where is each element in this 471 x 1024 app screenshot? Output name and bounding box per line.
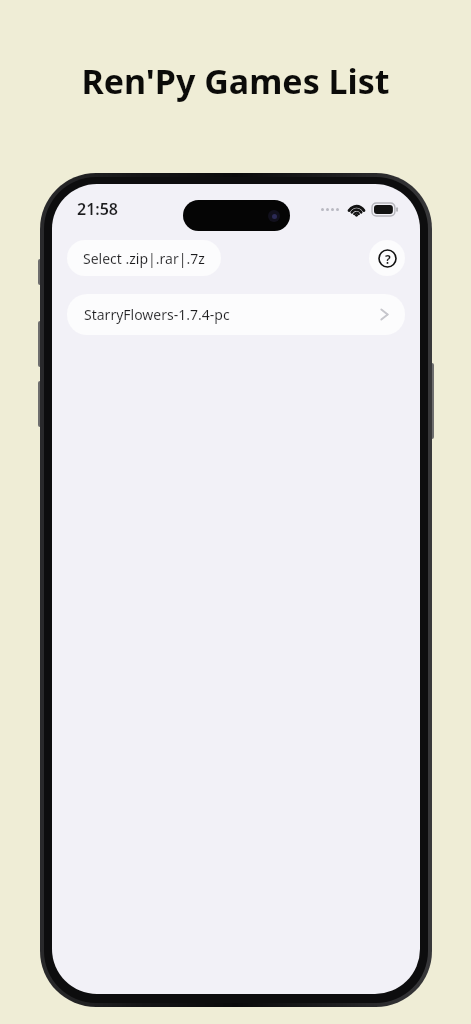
button[interactable]: Help [369,240,405,276]
staticText: Select .zip|.rar|.7z [83,249,205,268]
button[interactable]: Select .zip|.rar|.7z [67,240,221,276]
staticText: Ren'Py Games List [0,58,471,104]
staticText: 21:58 [77,198,119,220]
staticText: StarryFlowers-1.7.4-pc [84,305,380,324]
button[interactable]: StarryFlowers-1.7.4-pc [67,294,405,335]
staticText: ? [385,251,391,267]
